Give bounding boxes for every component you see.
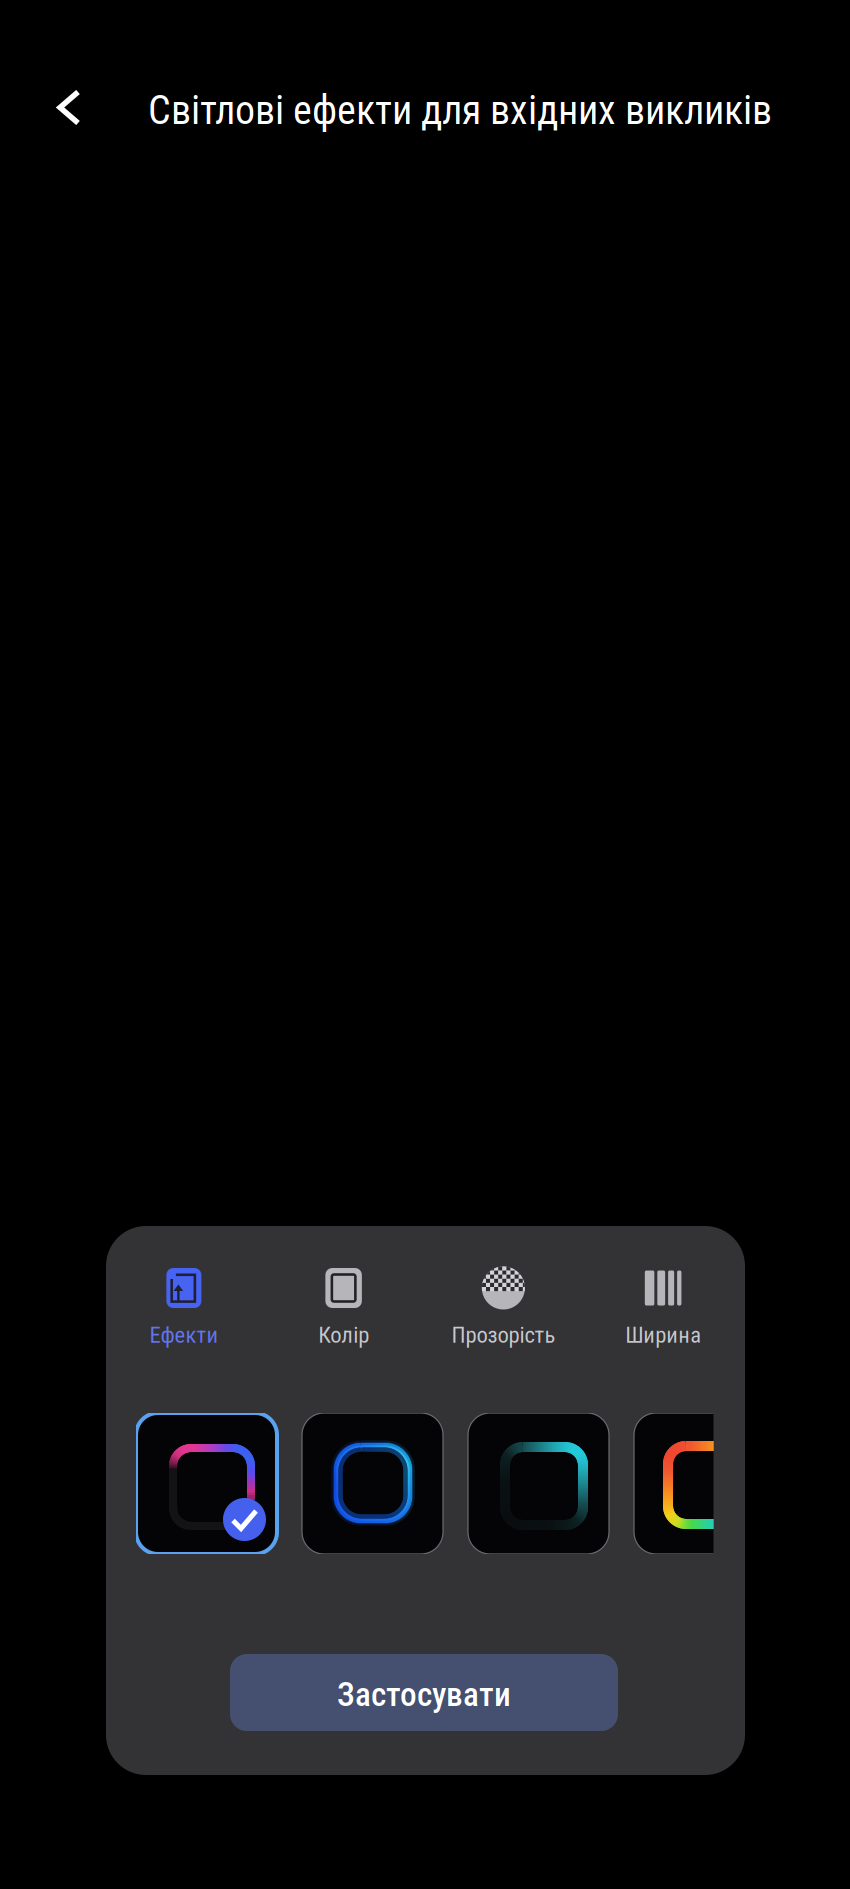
button[interactable]: Ширина: [583, 1254, 743, 1354]
staticText: Ширина: [625, 1322, 701, 1348]
staticText: Застосувати: [337, 1675, 511, 1714]
button[interactable]: Back: [37, 76, 101, 140]
button[interactable]: Ефекти: [104, 1254, 264, 1354]
button[interactable]: Прозорість: [423, 1254, 583, 1354]
staticText: Світлові ефекти для вхідних викликів: [148, 87, 772, 134]
staticText: Прозорість: [451, 1322, 555, 1348]
button[interactable]: Застосувати: [230, 1654, 618, 1731]
staticText: Колір: [318, 1322, 369, 1348]
staticText: Ефекти: [149, 1322, 218, 1348]
button[interactable]: Колір: [264, 1254, 424, 1354]
